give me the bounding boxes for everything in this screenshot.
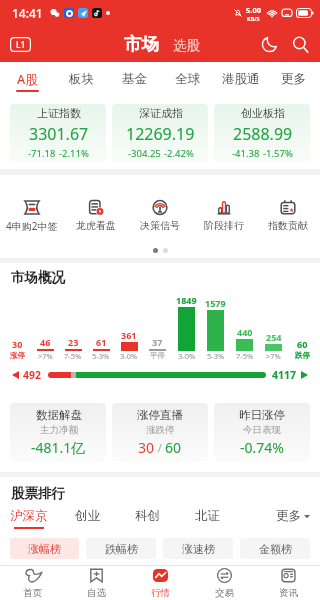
staticText: 港股通	[222, 71, 260, 87]
button[interactable]: 更多	[276, 508, 310, 524]
button[interactable]: 市场	[124, 33, 159, 55]
staticText: 3301.67	[29, 123, 89, 145]
staticText: 37	[152, 336, 163, 348]
staticText: 数据解盘	[36, 408, 82, 422]
button[interactable]: 涨速榜	[163, 538, 233, 559]
staticText: -481.1亿	[31, 438, 86, 457]
button[interactable]: 4申购2中签	[0, 200, 64, 233]
staticText: 30	[138, 438, 155, 457]
staticText: -304.25	[128, 147, 161, 160]
button[interactable]: 北证	[195, 508, 220, 529]
staticText: -41.38	[232, 147, 260, 160]
staticText: 更多	[281, 71, 306, 87]
staticText: 4117	[272, 368, 297, 382]
button[interactable]: 跌幅榜	[86, 538, 156, 559]
button[interactable]: 金额榜	[240, 538, 310, 559]
button[interactable]: Night mode	[260, 35, 279, 54]
button[interactable]: 港股通	[214, 62, 267, 96]
button[interactable]: 龙虎看盘	[64, 200, 128, 232]
staticText: 60	[297, 338, 308, 350]
staticText: A股	[17, 71, 38, 88]
button[interactable]: 阶段排行	[192, 200, 256, 232]
button[interactable]: 昨日涨停	[214, 403, 310, 461]
button[interactable]: 深证成指	[112, 104, 208, 162]
button[interactable]: 行情	[128, 566, 192, 600]
staticText: 涨停	[10, 351, 25, 360]
staticText: 今日表现	[243, 424, 281, 436]
staticText: 492	[23, 368, 42, 382]
button[interactable]: 自选	[64, 566, 128, 600]
button[interactable]: Search	[291, 35, 310, 54]
staticText: 440	[237, 326, 253, 338]
button[interactable]: 首页	[0, 566, 64, 600]
staticText: 更多	[276, 508, 301, 524]
staticText: 科创	[135, 508, 160, 524]
staticText: 23	[68, 336, 79, 348]
button[interactable]: 基金	[108, 62, 161, 96]
staticText: 涨跌停	[146, 424, 175, 436]
button[interactable]: 上证指数	[10, 104, 106, 162]
staticText: -2.11%	[59, 147, 89, 160]
staticText: 60	[165, 438, 182, 457]
staticText: 涨速榜	[182, 542, 215, 556]
staticText: 指数贡献	[268, 219, 308, 232]
button[interactable]: 更多	[267, 62, 320, 96]
button[interactable]: 选股	[173, 36, 200, 53]
staticText: KB/S	[247, 15, 260, 22]
staticText: 5-3%	[92, 351, 110, 361]
staticText: 沪深京	[10, 508, 48, 524]
staticText: 基金	[122, 71, 147, 87]
staticText: 跌幅榜	[105, 542, 138, 556]
button[interactable]: 数据解盘	[10, 403, 106, 461]
button[interactable]: 涨幅榜	[10, 538, 79, 559]
staticText: 跌停	[295, 351, 310, 360]
staticText: 龙虎看盘	[76, 219, 116, 232]
staticText: 涨停直播	[137, 408, 183, 422]
staticText: 7-5%	[236, 351, 254, 361]
staticText: -0.74%	[240, 438, 284, 457]
staticText: 46	[40, 336, 51, 348]
button[interactable]: 板块	[54, 62, 108, 96]
staticText: 昨日涨停	[239, 408, 285, 422]
button[interactable]: 沪深京	[10, 508, 48, 529]
staticText: 4申购2中签	[6, 219, 58, 233]
staticText: 资讯	[279, 587, 298, 598]
staticText: 14:41	[12, 5, 43, 21]
button[interactable]: A股	[0, 62, 54, 96]
staticText: -71.18	[28, 147, 56, 160]
staticText: 361	[121, 329, 137, 341]
button[interactable]: 创业	[75, 508, 100, 529]
button[interactable]: 全球	[161, 62, 214, 96]
button[interactable]: 涨停直播	[112, 403, 208, 461]
staticText: 创业	[75, 508, 100, 524]
staticText: 5.00	[246, 5, 261, 15]
staticText: 板块	[69, 71, 94, 87]
staticText: 创业板指	[241, 106, 285, 120]
staticText: 2588.99	[233, 123, 293, 145]
button[interactable]: 创业板指	[214, 104, 310, 162]
button[interactable]: 资讯	[256, 566, 320, 600]
staticText: 首页	[23, 587, 42, 598]
staticText: 1849	[176, 294, 197, 306]
staticText: 行情	[151, 587, 170, 598]
staticText: -1.57%	[263, 147, 293, 160]
staticText: 7-5%	[64, 351, 82, 361]
staticText: 深证成指	[139, 106, 183, 120]
staticText: 3-0%	[120, 351, 138, 361]
staticText: 254	[266, 331, 282, 343]
staticText: >7%	[38, 351, 53, 361]
staticText: 61	[96, 336, 107, 348]
button[interactable]: 科创	[135, 508, 160, 529]
staticText: 涨幅榜	[28, 542, 61, 556]
staticText: 交易	[215, 587, 234, 598]
button[interactable]: 指数贡献	[256, 200, 320, 232]
staticText: 市场概况	[11, 269, 65, 286]
staticText: 平停	[150, 351, 165, 360]
staticText: 主力净额	[40, 424, 78, 436]
staticText: 自选	[87, 587, 106, 598]
staticText: L1	[16, 39, 26, 51]
button[interactable]: L1 quote level	[10, 37, 31, 52]
staticText: 1579	[205, 297, 226, 309]
button[interactable]: 决策信号	[128, 200, 192, 232]
button[interactable]: 交易	[192, 566, 256, 600]
